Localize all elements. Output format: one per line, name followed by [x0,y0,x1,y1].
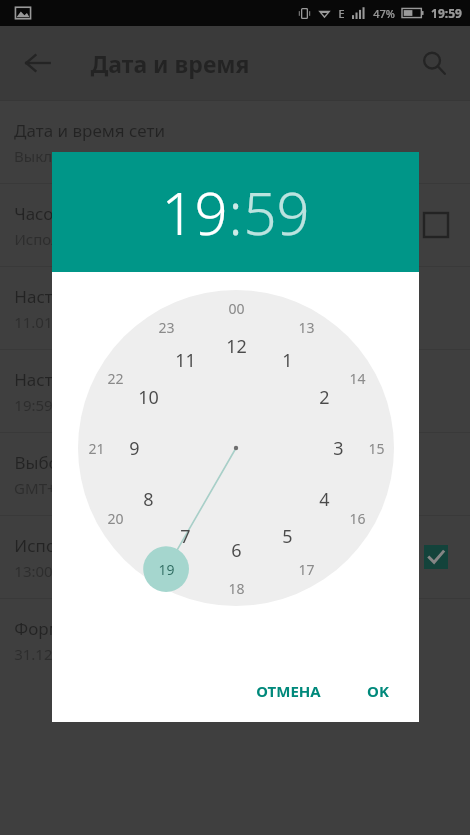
button[interactable]: 20 [98,501,132,535]
button[interactable]: Search [412,41,456,85]
button[interactable]: 00 [219,291,253,325]
button[interactable]: 17 [289,552,323,586]
button[interactable]: 13 [289,310,323,344]
staticText: 5 [282,524,293,549]
button[interactable]: 8 [131,482,165,516]
staticText: 14 [349,369,366,388]
staticText: 19:59 [431,5,462,21]
button[interactable]: Дата и время сети [0,101,470,183]
button[interactable]: Toggle [418,539,454,575]
button[interactable]: 2 [307,380,341,414]
button[interactable]: 4 [307,482,341,516]
staticText: Настройка даты [14,285,147,308]
staticText: 20 [107,509,124,528]
button[interactable]: 7 [168,519,202,553]
staticText: 10 [138,385,159,410]
button[interactable]: Использовать 24-часовой формат [0,516,470,598]
button[interactable]: 12 [219,329,253,363]
button[interactable]: 23 [149,310,183,344]
staticText: 00 [228,299,245,318]
button[interactable]: Выбор часового пояса [0,433,470,515]
button[interactable]: ОТМЕНА [244,672,333,710]
staticText: Формат даты [14,617,124,640]
button[interactable]: 16 [340,501,374,535]
staticText: Настройка времени [14,368,179,391]
button[interactable]: 14 [340,361,374,395]
staticText: Выбор часового пояса [14,451,201,474]
staticText: 4 [319,487,330,512]
button[interactable]: 19 [161,173,228,252]
staticText: 3 [333,436,344,461]
staticText: 13:00 [14,561,53,581]
staticText: Дата и время [90,48,250,79]
staticText: 59 [243,173,310,252]
staticText: 19 [161,173,228,252]
button[interactable]: Toggle [418,207,454,243]
button[interactable]: 3 [321,431,355,465]
staticText: 9 [129,436,140,461]
staticText: 13 [298,318,315,337]
staticText: OK [367,681,389,701]
staticText: 11 [175,348,196,373]
staticText: 12 [226,334,247,359]
button[interactable]: 59 [243,173,310,252]
staticText: 11.01.2024 [14,312,91,332]
button[interactable]: Настройка времени [0,350,470,432]
button[interactable]: 18 [219,571,253,605]
staticText: 21 [88,439,105,458]
staticText: 16 [349,509,366,528]
staticText: : [228,173,243,252]
button[interactable]: 5 [270,519,304,553]
staticText: 6 [231,538,242,563]
button[interactable]: Часовой пояс сети [0,184,470,266]
staticText: 31.12.2024 [14,644,91,664]
button[interactable]: 22 [98,361,132,395]
button[interactable]: 9 [117,431,151,465]
staticText: Выкл [14,146,52,166]
staticText: E [338,6,345,21]
staticText: GMT+03:00 [14,478,94,498]
button[interactable]: Back [16,41,60,85]
button[interactable]: 15 [359,431,393,465]
button[interactable]: 1 [270,343,304,377]
staticText: 2 [319,385,330,410]
button[interactable]: Формат даты [0,599,470,681]
button[interactable]: 21 [79,431,113,465]
staticText: 15 [368,439,385,458]
staticText: 18 [228,579,245,598]
staticText: 8 [143,487,154,512]
staticText: 19 [158,560,175,579]
staticText: 17 [298,560,315,579]
staticText: Дата и время сети [14,119,165,142]
button[interactable]: OK [355,672,401,710]
staticText: 7 [180,524,191,549]
staticText: 1 [282,348,293,373]
button[interactable]: 6 [219,533,253,567]
staticText: Использовать 24-часовой формат [14,534,295,557]
staticText: 22 [107,369,124,388]
button[interactable]: 11 [168,343,202,377]
button[interactable]: 10 [131,380,165,414]
staticText: Часовой пояс сети [14,202,167,225]
staticText: 19:59 [14,395,53,415]
button[interactable]: 19 [149,552,183,586]
staticText: 23 [158,318,175,337]
staticText: ОТМЕНА [256,681,321,701]
staticText: 47% [373,6,395,21]
staticText: Использовать сеть [14,229,151,249]
button[interactable]: Настройка даты [0,267,470,349]
